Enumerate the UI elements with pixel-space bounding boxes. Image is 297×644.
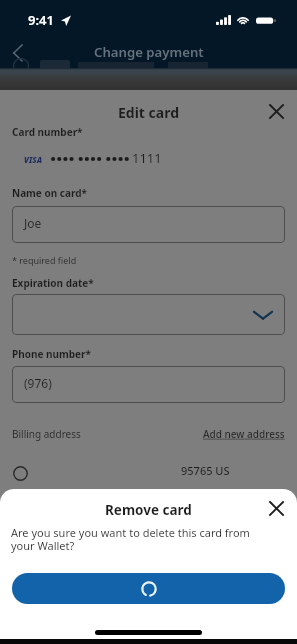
button[interactable]: Remove card [12,573,285,604]
button[interactable]: Select billing address [11,464,29,482]
button[interactable]: Close [264,496,288,520]
staticText: Change payment [94,43,204,61]
staticText: Billing address [12,427,81,441]
staticText: 95765 US [181,463,230,478]
button[interactable]: Back [1,37,33,69]
staticText: Name on card* [12,186,87,200]
staticText: Expiration date* [12,276,94,290]
staticText: 1111 [132,149,162,167]
staticText: VISA [24,154,43,165]
staticText: (976) [24,375,52,391]
staticText: Phone number* [12,347,91,361]
staticText: Joe [24,215,42,231]
staticText: Card number* [12,125,83,139]
button[interactable]: Add new address [203,427,285,441]
button[interactable] [12,294,285,335]
staticText: Are you sure you want to delete this car… [11,525,251,553]
button[interactable]: Close [264,99,288,123]
button[interactable]: Joe [12,206,285,243]
staticText: Add new address [203,427,285,441]
staticText: 9:41 [28,11,54,29]
button[interactable]: (976) [12,366,285,403]
staticText: Remove card [105,501,192,519]
staticText: Edit card [118,103,180,122]
staticText: * required field [12,254,77,266]
